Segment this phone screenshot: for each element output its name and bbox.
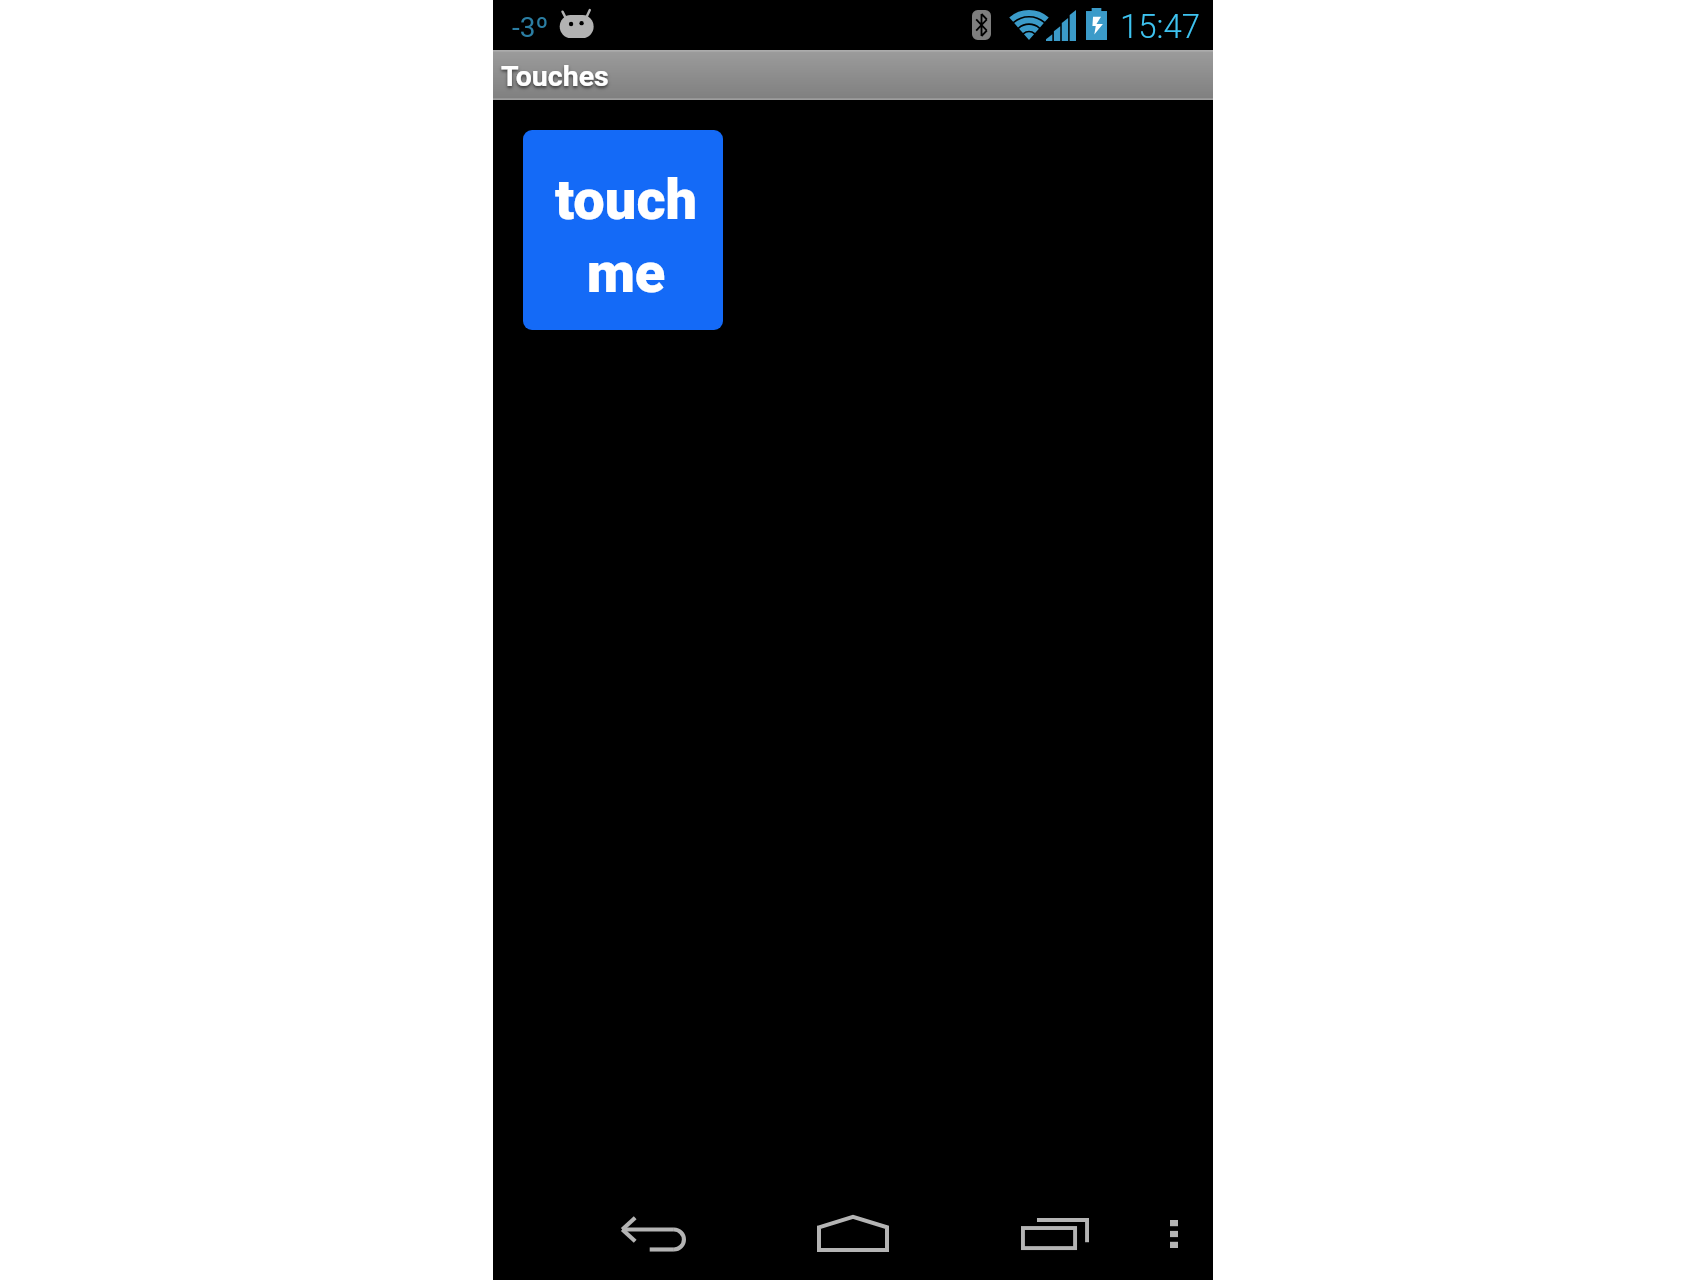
staticText: touch me bbox=[526, 167, 723, 305]
button[interactable]: Back bbox=[596, 1196, 710, 1268]
staticText: Touches bbox=[501, 60, 609, 93]
staticText: -3º bbox=[512, 11, 549, 44]
button[interactable]: Recent apps bbox=[998, 1196, 1112, 1268]
staticText: 15:47 bbox=[1120, 7, 1201, 46]
button[interactable]: More options bbox=[1146, 1196, 1202, 1268]
button[interactable]: Home bbox=[796, 1196, 910, 1268]
button[interactable]: touch me bbox=[523, 130, 723, 330]
